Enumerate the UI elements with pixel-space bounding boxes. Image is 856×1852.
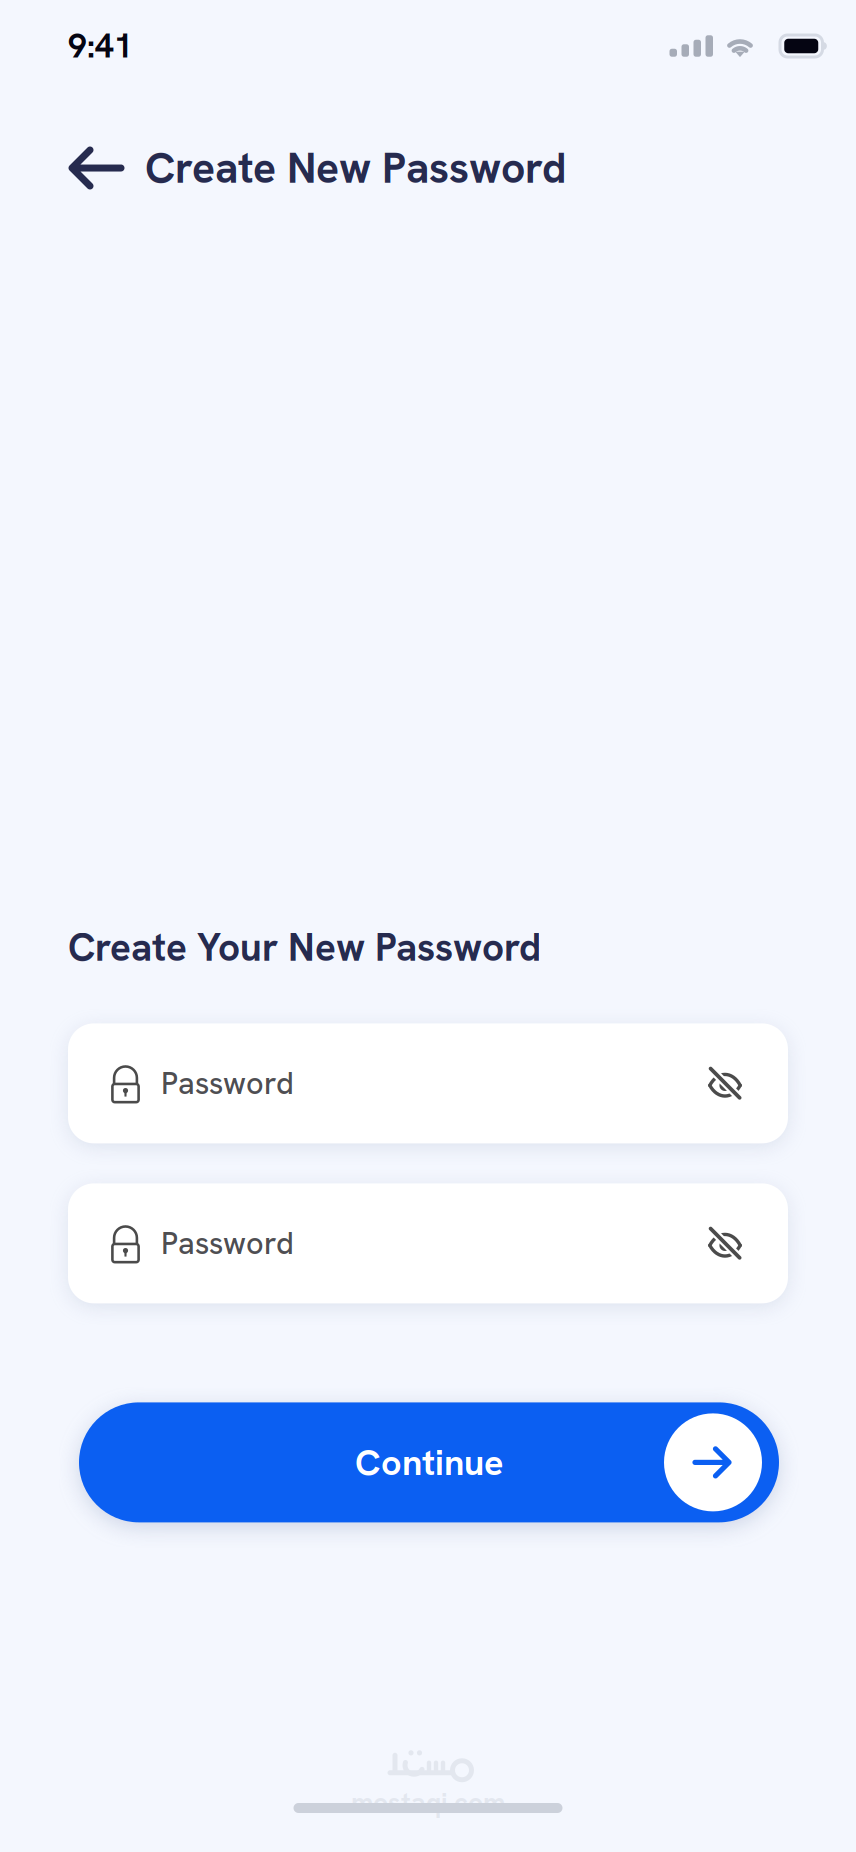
staticText: Password [161, 1063, 294, 1103]
button[interactable]: Password [68, 1023, 788, 1143]
button[interactable]: Back [68, 140, 125, 196]
button[interactable]: Continue [79, 1402, 779, 1522]
button[interactable]: Password [68, 1183, 788, 1303]
staticText: mostaqi.com [351, 1785, 505, 1820]
staticText: Create Your New Password [68, 922, 541, 972]
staticText: 9:41 [68, 24, 133, 68]
staticText: Continue [355, 1439, 503, 1486]
staticText: Create New Password [145, 140, 566, 196]
staticText: Password [161, 1223, 294, 1263]
